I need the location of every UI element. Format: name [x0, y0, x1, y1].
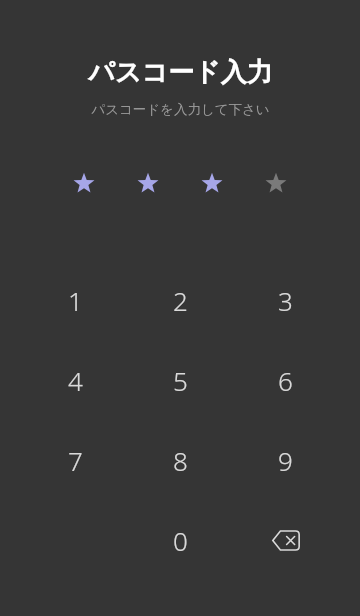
button[interactable]: 5 — [128, 340, 233, 420]
button[interactable]: 2 — [128, 260, 233, 340]
button[interactable]: 9 — [233, 420, 338, 500]
staticText: パスコード入力 — [88, 56, 273, 89]
button[interactable]: 8 — [128, 420, 233, 500]
staticText: 5 — [173, 363, 188, 398]
button[interactable]: 3 — [233, 260, 338, 340]
staticText: 1 — [68, 283, 83, 318]
button[interactable]: 1 — [23, 260, 128, 340]
staticText: 2 — [173, 283, 188, 318]
button[interactable]: 0 — [128, 500, 233, 580]
staticText: 6 — [278, 363, 293, 398]
button[interactable]: Backspace — [233, 500, 338, 580]
staticText: 9 — [278, 443, 293, 478]
staticText: 3 — [278, 283, 293, 318]
staticText: パスコードを入力して下さい — [91, 101, 270, 118]
button[interactable]: 4 — [23, 340, 128, 420]
button[interactable]: 6 — [233, 340, 338, 420]
staticText: 8 — [173, 443, 188, 478]
staticText: 4 — [68, 363, 83, 398]
button[interactable]: 7 — [23, 420, 128, 500]
staticText: 7 — [68, 443, 83, 478]
staticText: 0 — [173, 523, 188, 558]
